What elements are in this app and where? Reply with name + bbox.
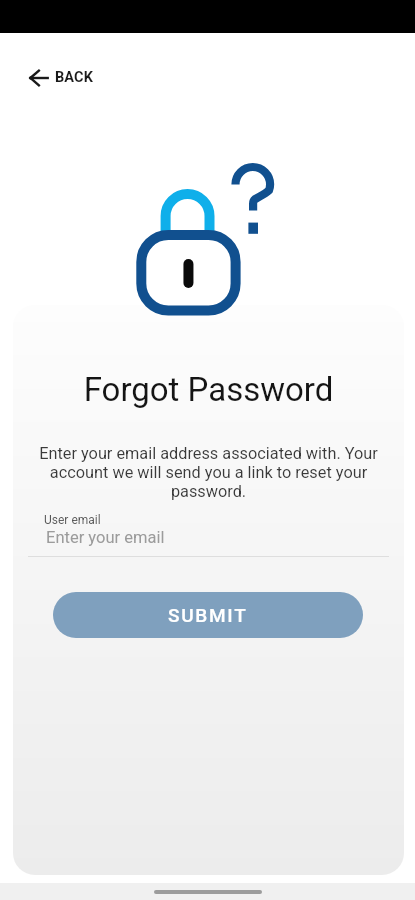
button[interactable]: User email xyxy=(28,513,389,557)
other: Back xyxy=(29,70,48,86)
button[interactable]: SUBMIT xyxy=(53,592,363,638)
staticText: BACK xyxy=(55,69,93,86)
staticText: SUBMIT xyxy=(168,604,248,626)
staticText: Forgot Password xyxy=(13,370,404,409)
staticText: Enter your email xyxy=(46,528,165,547)
staticText: Enter your email address associated with… xyxy=(25,444,392,501)
staticText: User email xyxy=(44,513,101,527)
button[interactable]: Back xyxy=(23,61,103,95)
